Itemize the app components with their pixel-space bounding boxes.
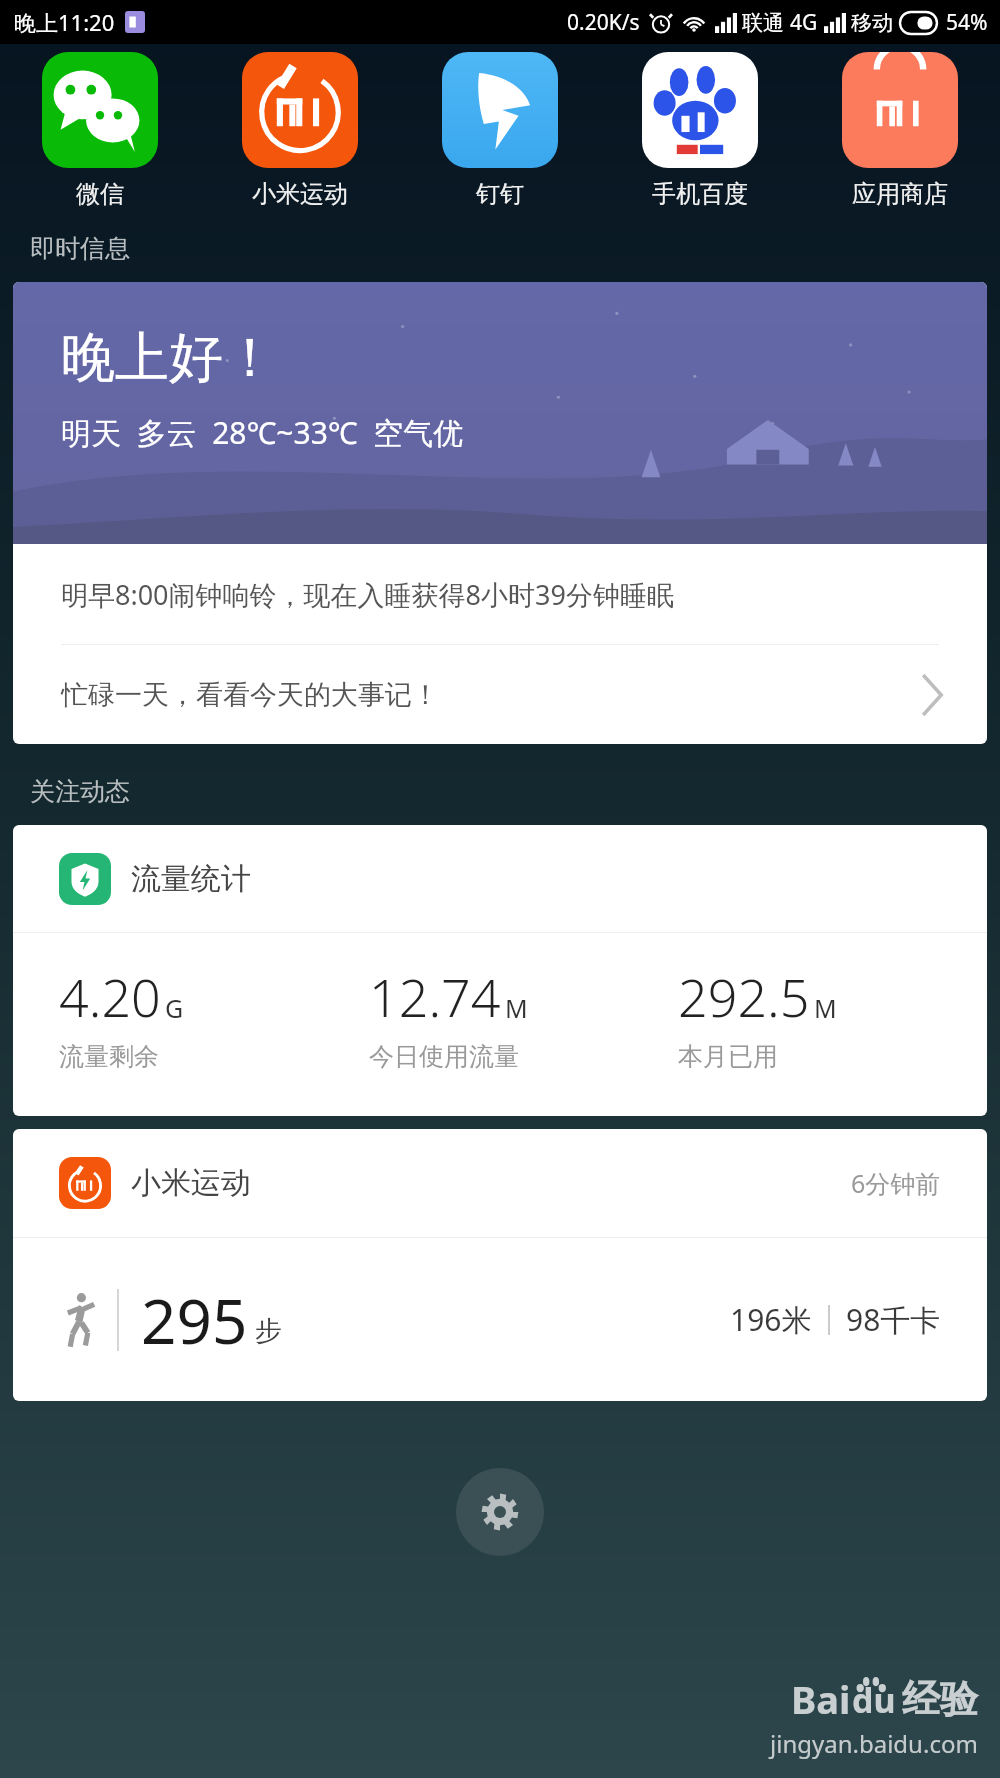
staticText: G	[165, 991, 184, 1025]
staticText: 晚上好！	[61, 324, 277, 392]
staticText: du	[852, 1677, 896, 1721]
staticText: 流量统计	[131, 860, 251, 898]
staticText: jingyan.baidu.com	[770, 1727, 978, 1760]
staticText: 本月已用	[678, 1041, 778, 1072]
button[interactable]: 微信	[0, 50, 200, 211]
button[interactable]: 流量统计	[13, 825, 987, 1116]
staticText: 6分钟前	[851, 1166, 941, 1200]
button[interactable]: 钉钉	[400, 50, 600, 211]
staticText: 196米	[730, 1299, 812, 1340]
button[interactable]: Settings	[456, 1468, 544, 1556]
staticText: 联通	[742, 10, 784, 36]
staticText: M	[505, 991, 528, 1025]
staticText: 4.20	[59, 961, 161, 1032]
staticText: 关注动态	[30, 776, 130, 807]
staticText: 98千卡	[846, 1299, 941, 1340]
button[interactable]: 小米运动	[200, 50, 400, 211]
staticText: 移动	[851, 10, 893, 36]
staticText: 明天 多云 28℃~33℃ 空气优	[61, 412, 464, 453]
staticText: 即时信息	[30, 233, 130, 264]
button[interactable]: 应用商店	[800, 50, 1000, 211]
staticText: M	[814, 991, 837, 1025]
button[interactable]: 手机百度	[600, 50, 800, 211]
staticText: 4G	[790, 8, 818, 37]
staticText: 微信	[76, 179, 124, 209]
staticText: 292.5	[678, 961, 810, 1032]
staticText: 晚上11:20	[14, 7, 115, 37]
staticText: 小米运动	[252, 179, 348, 209]
staticText: 钉钉	[476, 179, 524, 209]
staticText: 手机百度	[652, 179, 748, 209]
staticText: 12.74	[369, 961, 501, 1032]
staticText: 0.20K/s	[567, 8, 640, 37]
button[interactable]: 忙碌一天，看看今天的大事记！	[13, 645, 987, 744]
staticText: 应用商店	[852, 179, 948, 209]
staticText: 小米运动	[131, 1164, 251, 1202]
staticText: 今日使用流量	[369, 1041, 519, 1072]
button[interactable]: 明早8:00闹钟响铃，现在入睡获得8小时39分钟睡眠	[13, 544, 987, 644]
staticText: 明早8:00闹钟响铃，现在入睡获得8小时39分钟睡眠	[61, 576, 674, 613]
staticText: 54%	[946, 8, 988, 37]
staticText: 经验	[902, 1675, 978, 1723]
button[interactable]: 小米运动	[13, 1129, 987, 1401]
staticText: 流量剩余	[59, 1041, 159, 1072]
staticText: 步	[255, 1314, 282, 1348]
staticText: 忙碌一天，看看今天的大事记！	[61, 678, 439, 712]
staticText: Bai	[791, 1673, 851, 1725]
button[interactable]: 晚上好！	[13, 282, 987, 544]
staticText: 295	[141, 1278, 248, 1362]
